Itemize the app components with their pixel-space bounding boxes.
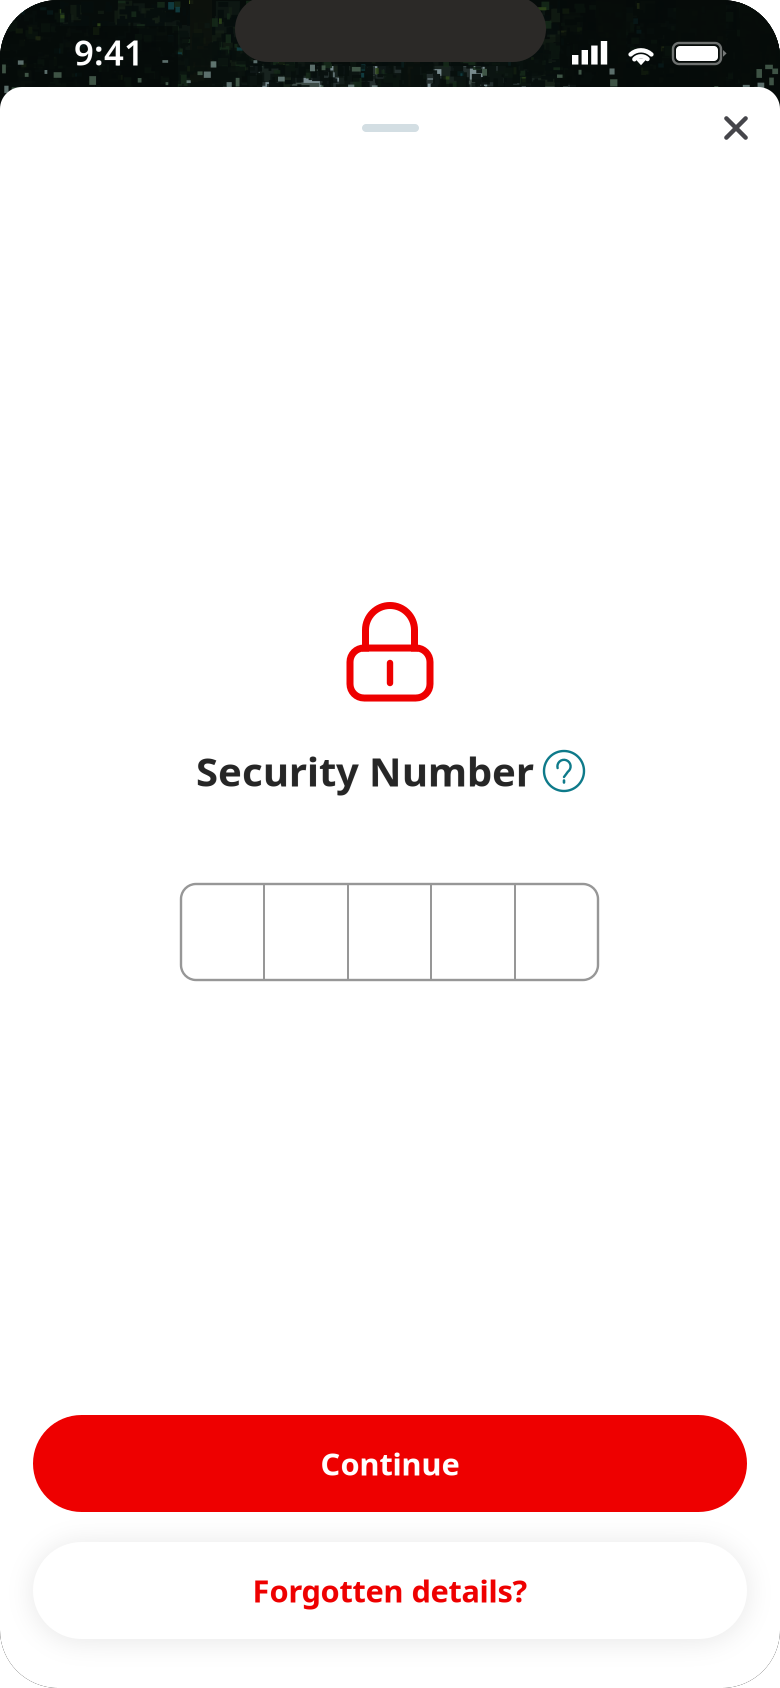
button[interactable]: Continue: [33, 1415, 747, 1512]
staticText: Forgotten details?: [252, 1570, 527, 1611]
staticText: Security Number: [196, 744, 534, 797]
staticText: Continue: [320, 1443, 459, 1484]
button[interactable]: Security number, 5 digits: [181, 884, 598, 980]
button[interactable]: What is a security number?: [544, 751, 584, 791]
staticText: 9:41: [74, 29, 144, 75]
button[interactable]: Forgotten details?: [33, 1542, 747, 1639]
button[interactable]: Close: [693, 85, 779, 171]
